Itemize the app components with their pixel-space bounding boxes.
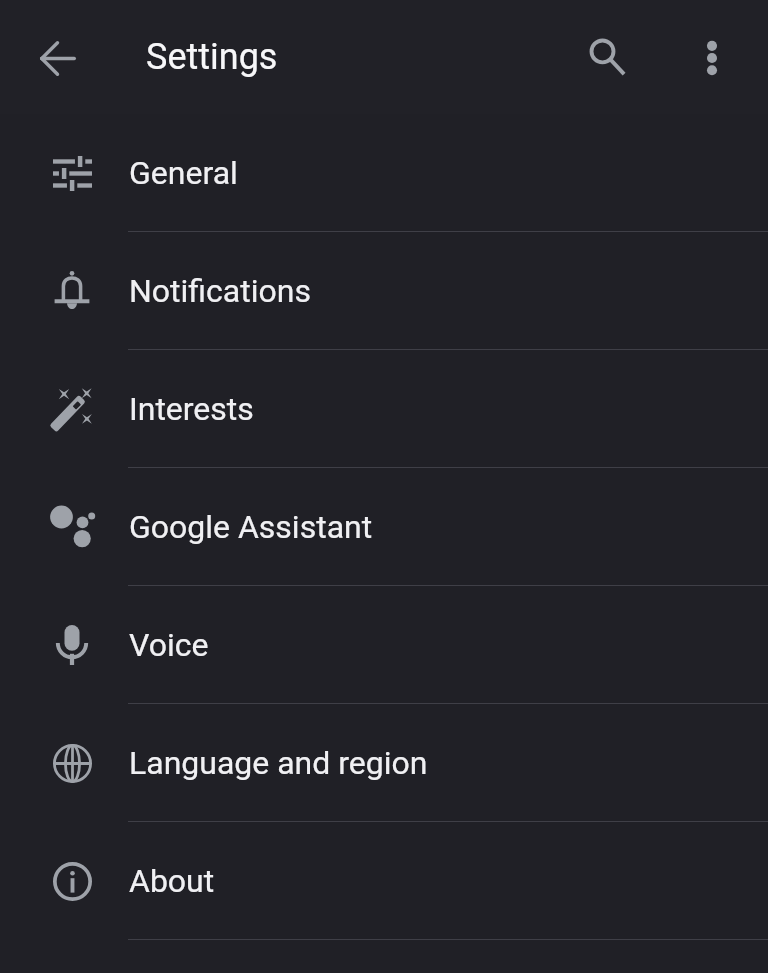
- staticText: Google Assistant: [129, 508, 373, 546]
- button[interactable]: Back: [21, 21, 93, 93]
- button[interactable]: Voice: [0, 586, 768, 704]
- button[interactable]: Language and region: [0, 704, 768, 822]
- staticText: Settings: [146, 36, 278, 78]
- staticText: Voice: [129, 626, 209, 664]
- button[interactable]: Notifications: [0, 232, 768, 350]
- staticText: Interests: [129, 390, 254, 428]
- staticText: Language and region: [129, 744, 428, 782]
- button[interactable]: Google Assistant: [0, 468, 768, 586]
- staticText: About: [129, 862, 215, 900]
- button[interactable]: About: [0, 822, 768, 940]
- button[interactable]: More options: [676, 21, 748, 93]
- button[interactable]: Search: [571, 21, 643, 93]
- staticText: Notifications: [129, 272, 311, 310]
- button[interactable]: Interests: [0, 350, 768, 468]
- button[interactable]: General: [0, 114, 768, 232]
- staticText: General: [129, 154, 238, 192]
